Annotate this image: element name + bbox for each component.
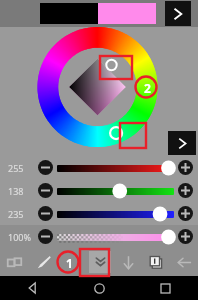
button[interactable]: Color wheel: [0, 27, 198, 156]
button[interactable]: Collapse panel: [86, 248, 114, 276]
button[interactable]: 138: [0, 179, 198, 202]
staticText: 235: [8, 208, 24, 220]
staticText: 255: [8, 162, 24, 174]
button[interactable]: Back: [170, 248, 198, 276]
staticText: 2: [144, 80, 151, 94]
button[interactable]: Increase 235: [178, 206, 193, 221]
button[interactable]: Next: [168, 131, 196, 155]
staticText: 1: [66, 255, 73, 269]
button[interactable]: Expand palette: [165, 1, 191, 26]
staticText: 100%: [8, 231, 31, 243]
button[interactable]: Decrease 255: [38, 160, 53, 175]
button[interactable]: Decrease 235: [38, 206, 53, 221]
button[interactable]: 100%: [0, 225, 198, 248]
button[interactable]: Increase 138: [178, 183, 193, 198]
button[interactable]: Increase 100%: [178, 229, 193, 244]
button[interactable]: Color picker: [58, 248, 86, 276]
button[interactable]: Download: [114, 248, 142, 276]
button[interactable]: 255: [0, 156, 198, 179]
button[interactable]: Decrease 100%: [38, 229, 53, 244]
button[interactable]: Swap colors: [0, 248, 29, 276]
button[interactable]: Decrease 138: [38, 183, 53, 198]
button[interactable]: Layers: [142, 248, 170, 276]
button[interactable]: Increase 255: [178, 160, 193, 175]
button[interactable]: Brush: [29, 248, 58, 276]
button[interactable]: 235: [0, 202, 198, 225]
button[interactable]: Recents: [132, 276, 198, 300]
staticText: 138: [8, 185, 24, 197]
button[interactable]: Home: [66, 276, 132, 300]
button[interactable]: Back: [0, 276, 66, 300]
